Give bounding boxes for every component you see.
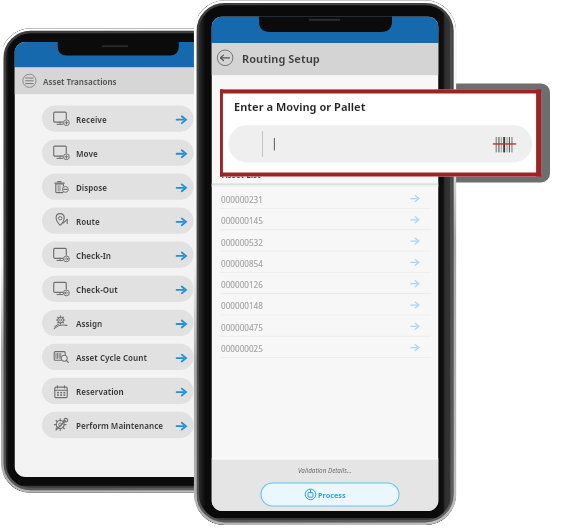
staticText: 000000145 — [221, 215, 263, 226]
button[interactable]: Menu — [20, 70, 42, 92]
button[interactable] — [212, 251, 439, 272]
staticText: Receive — [76, 114, 107, 125]
staticText: Process — [318, 490, 346, 500]
staticText: 000000854 — [221, 258, 263, 269]
staticText: Enter a Moving or Pallet — [234, 99, 366, 114]
staticText: Validation Details... — [298, 466, 352, 475]
staticText: Perform Maintenance — [76, 420, 164, 431]
button[interactable] — [42, 276, 194, 302]
button[interactable]: Back — [215, 47, 237, 69]
button[interactable]: Scan barcode — [228, 125, 532, 162]
staticText: 000000475 — [221, 322, 263, 333]
staticText: 000000025 — [221, 343, 263, 354]
button[interactable] — [212, 272, 439, 293]
button[interactable] — [42, 242, 194, 268]
staticText: 000000231 — [221, 194, 263, 205]
staticText: Asset Transactions — [43, 77, 117, 88]
staticText: 000000126 — [221, 279, 263, 290]
staticText: 000000532 — [221, 237, 263, 248]
button[interactable] — [212, 187, 439, 208]
staticText: Routing Setup — [242, 51, 320, 66]
button[interactable] — [42, 310, 194, 336]
button[interactable] — [42, 174, 194, 200]
button[interactable] — [42, 105, 194, 131]
staticText: Dispose — [76, 182, 108, 193]
button[interactable] — [212, 294, 439, 315]
staticText: Asset List — [222, 169, 261, 180]
button[interactable] — [212, 315, 439, 336]
staticText: Reservation — [76, 386, 124, 397]
button[interactable] — [212, 208, 439, 229]
button[interactable] — [42, 412, 194, 438]
button[interactable] — [42, 344, 194, 370]
staticText: Move — [76, 148, 98, 159]
button[interactable] — [212, 336, 439, 357]
button[interactable] — [42, 139, 194, 165]
staticText: Assign — [76, 318, 103, 329]
button[interactable] — [42, 378, 194, 404]
button[interactable] — [212, 230, 439, 251]
staticText: Check-In — [76, 250, 112, 261]
staticText: Asset Cycle Count — [76, 352, 147, 363]
staticText: 000000148 — [221, 300, 263, 311]
button[interactable] — [42, 208, 194, 234]
button[interactable] — [261, 483, 399, 506]
staticText: Route — [76, 216, 100, 227]
staticText: Check-Out — [76, 284, 118, 295]
